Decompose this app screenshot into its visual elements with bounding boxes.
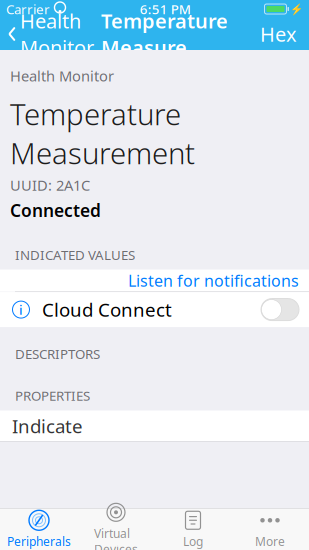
staticText: Hex	[260, 21, 297, 47]
staticText: Virtual Devices	[94, 525, 138, 550]
button[interactable]: Virtual Devices	[77, 509, 154, 550]
staticText: Log	[183, 533, 203, 549]
staticText: Carrier	[6, 0, 50, 18]
button[interactable]: Listen for notifications	[0, 270, 309, 292]
staticText: INDICATED VALUES	[15, 246, 135, 264]
staticText: UUID: 2A1C	[10, 175, 90, 195]
button[interactable]: More	[231, 509, 308, 550]
staticText: Health Monitor	[20, 7, 94, 60]
staticText: Connected	[10, 199, 101, 222]
button[interactable]: i	[0, 292, 309, 327]
button[interactable]: Health Monitor	[0, 1, 94, 66]
staticText: Cloud Connect	[42, 297, 172, 322]
staticText: Peripherals	[7, 533, 71, 549]
staticText: Temperature Measurement	[10, 94, 195, 172]
staticText: PROPERTIES	[15, 387, 90, 404]
staticText: i	[19, 301, 23, 318]
button[interactable]: Peripherals	[0, 509, 77, 550]
staticText: ⚡	[290, 3, 303, 15]
button[interactable]: Log	[154, 509, 231, 550]
staticText: DESCRIPTORS	[15, 345, 100, 363]
button[interactable]: Hex	[252, 15, 305, 53]
staticText: Listen for notifications	[128, 270, 299, 291]
staticText: Health Monitor	[10, 66, 114, 85]
staticText: 6:51 PM	[140, 0, 191, 18]
staticText: Indicate	[12, 414, 83, 438]
staticText: Temperature Measure...	[101, 7, 228, 60]
staticText: More	[255, 533, 285, 549]
